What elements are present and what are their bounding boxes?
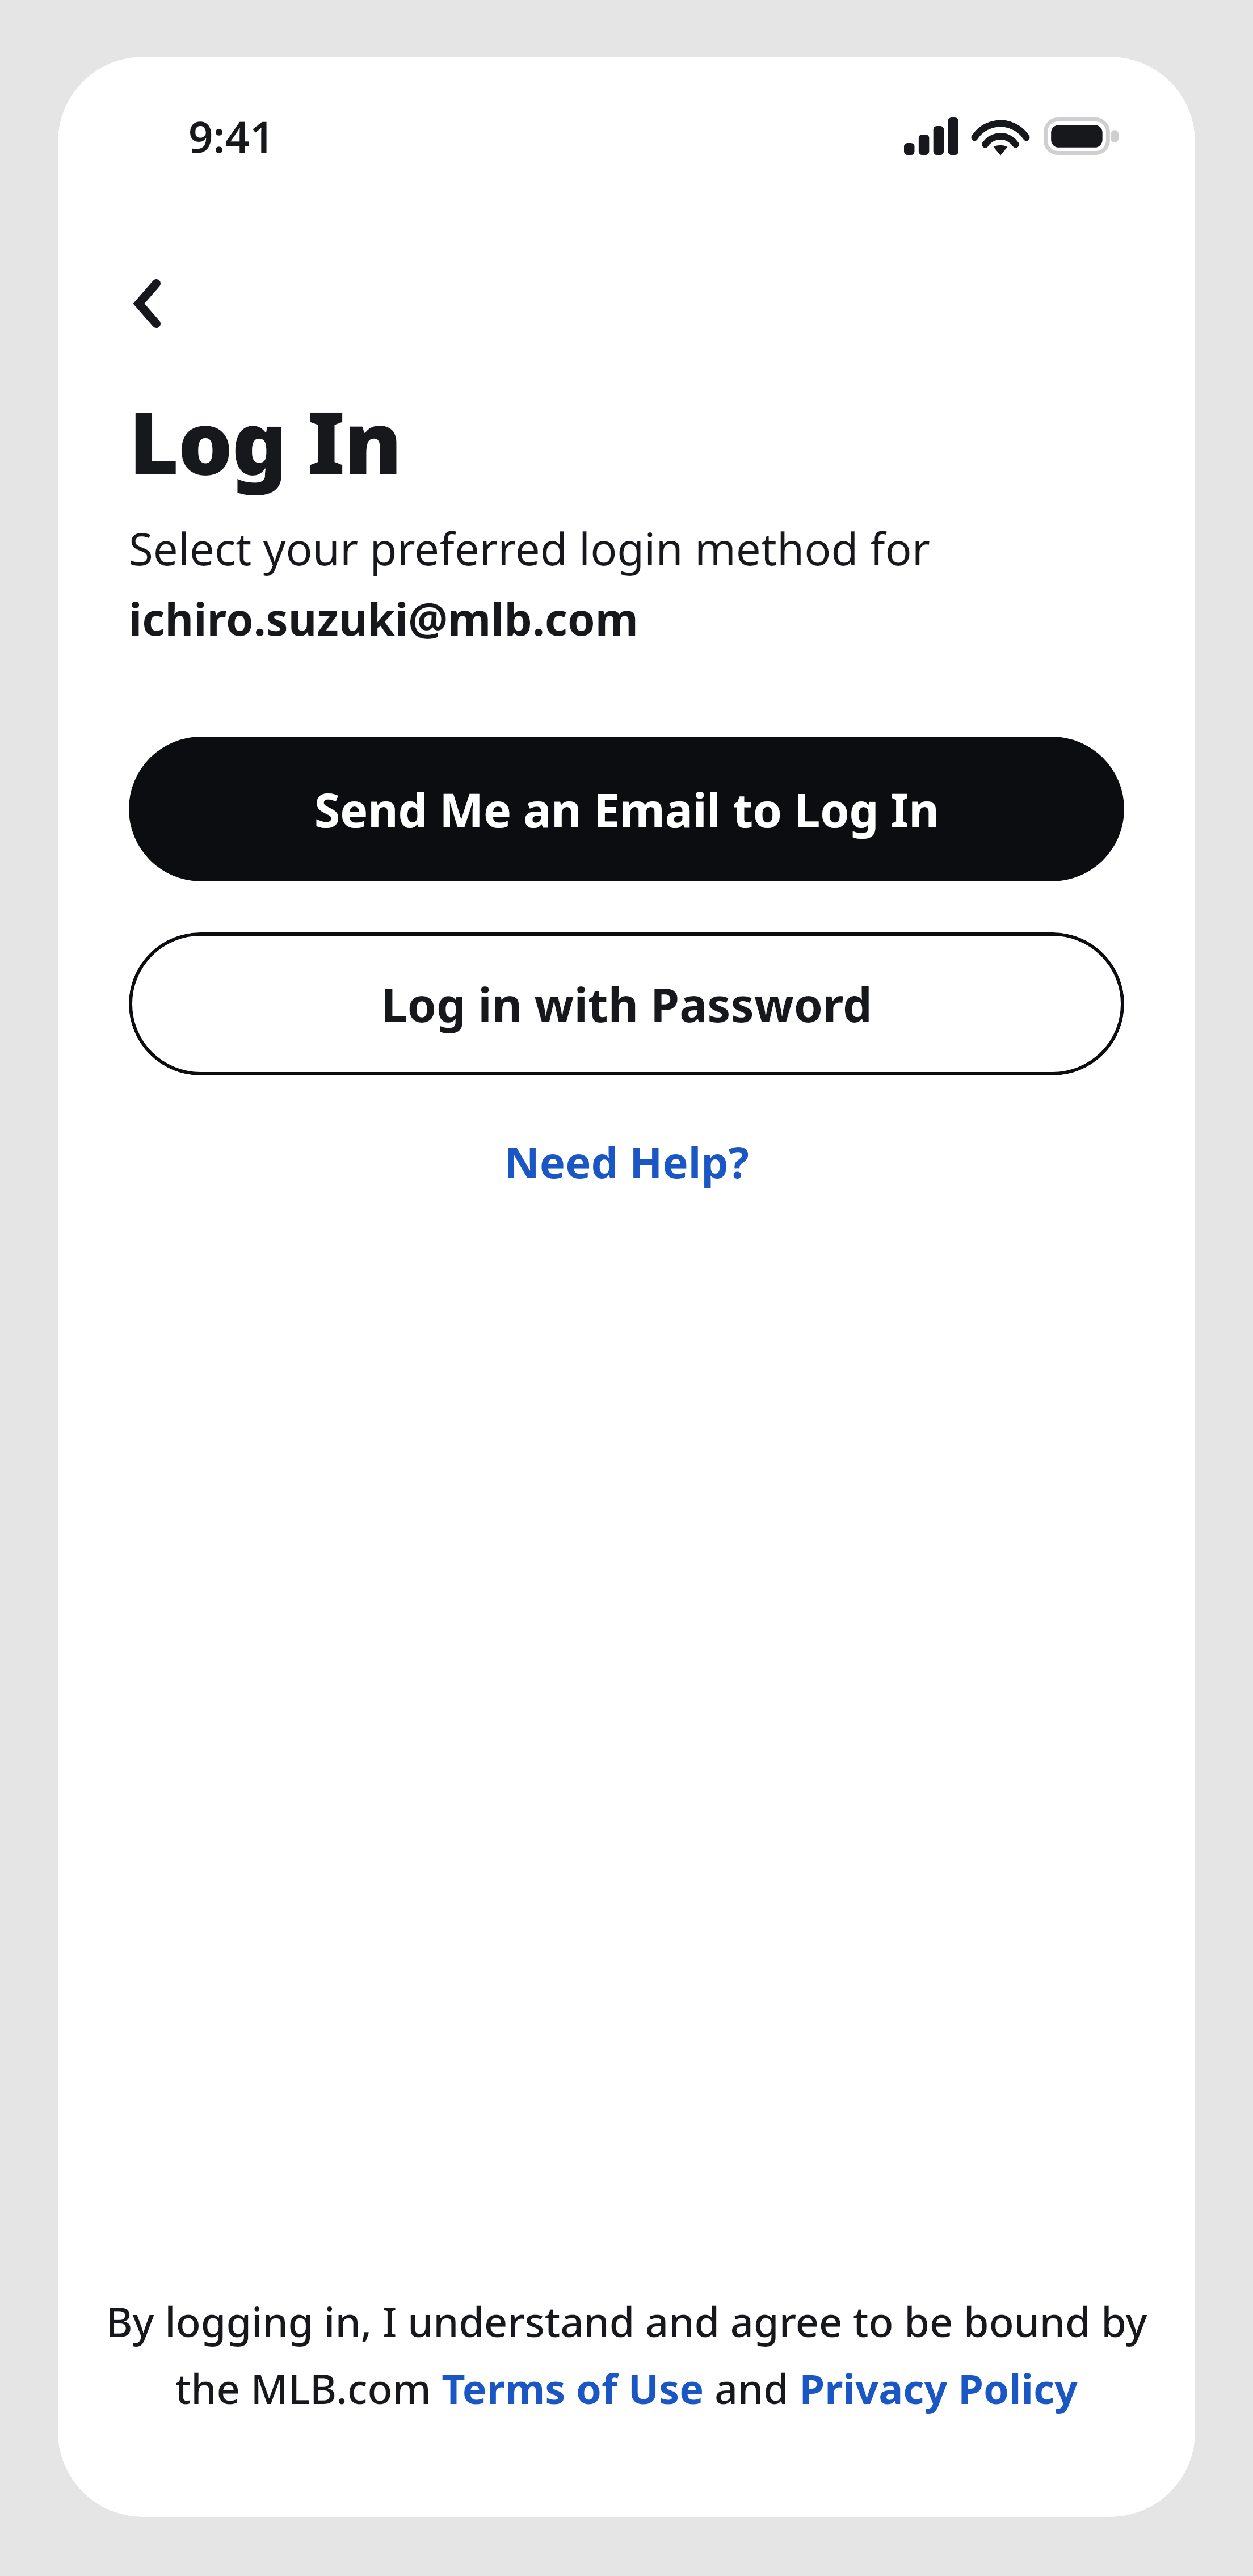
button[interactable]: Need Help? xyxy=(489,1122,765,1201)
button[interactable]: Log in with Password xyxy=(129,932,1124,1075)
staticText: 9:41 xyxy=(188,107,275,166)
button[interactable]: Back xyxy=(116,272,179,335)
button[interactable]: Send Me an Email to Log In xyxy=(129,737,1124,881)
staticText: By logging in, I understand and agree to… xyxy=(103,2293,1150,2416)
staticText: Log In xyxy=(129,383,401,500)
button[interactable]: By logging in, I understand and agree to… xyxy=(103,2293,1150,2517)
staticText: ichiro.suzuki@mlb.com xyxy=(129,589,638,649)
staticText: Select your preferred login method for xyxy=(129,518,930,578)
staticText: Log in with Password xyxy=(381,972,872,1036)
staticText: Send Me an Email to Log In xyxy=(314,778,939,841)
staticText: Need Help? xyxy=(504,1132,749,1191)
